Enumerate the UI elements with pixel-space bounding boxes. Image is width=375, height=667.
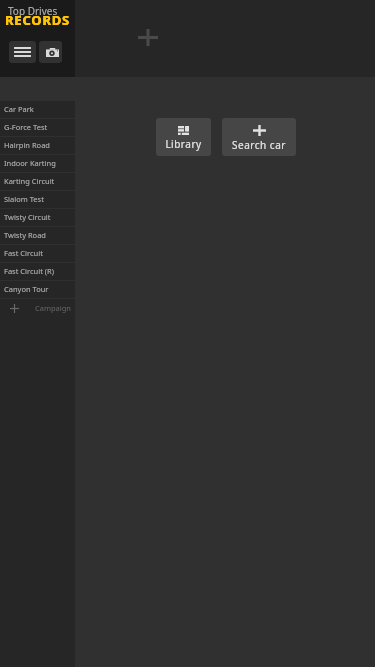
staticText: Top Drives: [8, 4, 58, 18]
staticText: Fast Circuit (R): [4, 266, 54, 276]
staticText: G-Force Test: [4, 122, 48, 132]
staticText: Fast Circuit: [4, 248, 43, 258]
staticText: Slalom Test: [4, 194, 44, 204]
button[interactable]: Karting Circuit: [0, 173, 75, 191]
button[interactable]: Fast Circuit (R): [0, 263, 75, 281]
staticText: Search car: [232, 138, 286, 152]
staticText: Hairpin Road: [4, 140, 50, 150]
staticText: Campaign: [35, 303, 71, 313]
button[interactable]: Canyon Tour: [0, 281, 75, 299]
staticText: Indoor Karting: [4, 158, 56, 168]
staticText: Car Park: [4, 104, 34, 114]
button[interactable]: Camera: [39, 41, 62, 63]
button[interactable]: Twisty Circuit: [0, 209, 75, 227]
button[interactable]: Add: [138, 29, 158, 46]
staticText: RECORDS: [5, 11, 70, 29]
staticText: RECORDS: [5, 11, 70, 29]
button[interactable]: Car Park: [0, 101, 75, 119]
button[interactable]: Indoor Karting: [0, 155, 75, 173]
button[interactable]: Search car: [222, 118, 296, 156]
button[interactable]: Fast Circuit: [0, 245, 75, 263]
staticText: Twisty Road: [4, 230, 46, 240]
staticText: Twisty Circuit: [4, 212, 51, 222]
staticText: Karting Circuit: [4, 176, 55, 186]
button[interactable]: G-Force Test: [0, 119, 75, 137]
button[interactable]: Twisty Road: [0, 227, 75, 245]
button[interactable]: Hairpin Road: [0, 137, 75, 155]
button[interactable]: Slalom Test: [0, 191, 75, 209]
staticText: Library: [165, 137, 202, 151]
staticText: Canyon Tour: [4, 284, 49, 294]
button[interactable]: Campaign: [0, 299, 75, 317]
button[interactable]: Library: [156, 118, 211, 156]
button[interactable]: Menu: [9, 41, 36, 63]
